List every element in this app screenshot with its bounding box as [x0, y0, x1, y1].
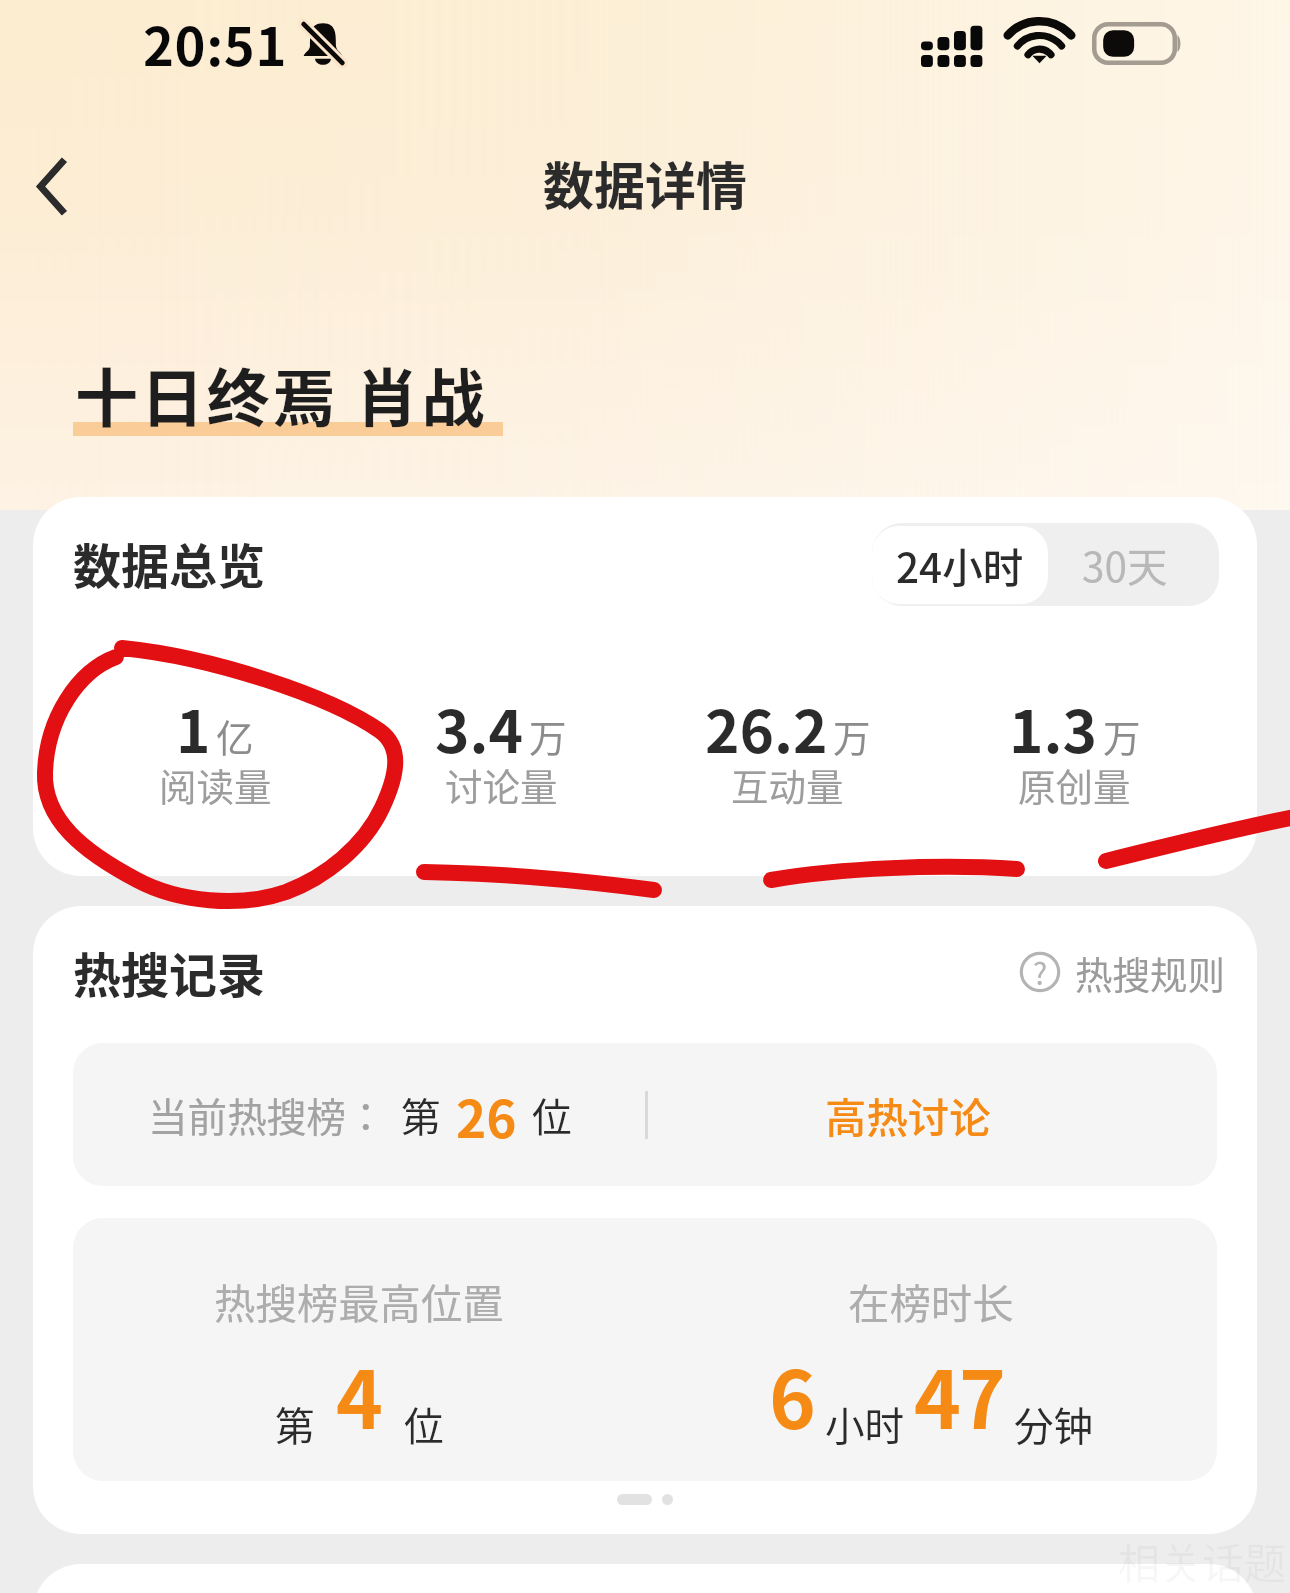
staticText: 6: [769, 1337, 816, 1452]
staticText: 分钟: [1014, 1395, 1094, 1452]
staticText: 万: [529, 708, 567, 762]
staticText: 在榜时长: [848, 1271, 1014, 1331]
staticText: 数据详情: [543, 146, 748, 220]
staticText: 26.2: [705, 685, 828, 770]
staticText: 万: [1103, 708, 1141, 762]
staticText: 阅读量: [159, 757, 272, 811]
staticText: 十日终焉 肖战: [75, 348, 488, 439]
button[interactable]: Back: [3, 123, 102, 249]
staticText: 原创量: [1018, 757, 1131, 811]
staticText: 位: [532, 1086, 572, 1143]
staticText: 1: [176, 685, 211, 770]
staticText: 热搜记录: [73, 937, 266, 1007]
staticText: 26: [456, 1078, 517, 1152]
staticText: 小时: [825, 1395, 905, 1452]
staticText: ?: [1033, 950, 1048, 992]
staticText: 互动量: [731, 757, 844, 811]
staticText: 第: [275, 1395, 315, 1452]
staticText: 位: [404, 1395, 444, 1452]
staticText: 数据总览: [73, 528, 266, 598]
button[interactable]: 30天: [1039, 523, 1210, 606]
staticText: 讨论量: [445, 757, 558, 811]
staticText: 第: [401, 1086, 441, 1143]
staticText: 4: [336, 1337, 383, 1452]
staticText: 当前热搜榜：: [148, 1086, 386, 1143]
staticText: 热搜榜最高位置: [214, 1271, 504, 1331]
staticText: 20:51: [143, 5, 287, 81]
staticText: 相关话题: [1118, 1530, 1287, 1591]
staticText: 24小时: [896, 536, 1024, 595]
button[interactable]: ?: [1019, 945, 1225, 999]
staticText: 47: [914, 1337, 1005, 1452]
staticText: 亿: [216, 708, 254, 762]
staticText: 热搜规则: [1075, 945, 1225, 999]
staticText: 30天: [1082, 535, 1168, 594]
button[interactable]: 24小时: [872, 526, 1048, 604]
staticText: 3.4: [435, 685, 524, 770]
staticText: 1.3: [1009, 685, 1098, 770]
staticText: 高热讨论: [825, 1085, 991, 1145]
staticText: 万: [833, 708, 871, 762]
